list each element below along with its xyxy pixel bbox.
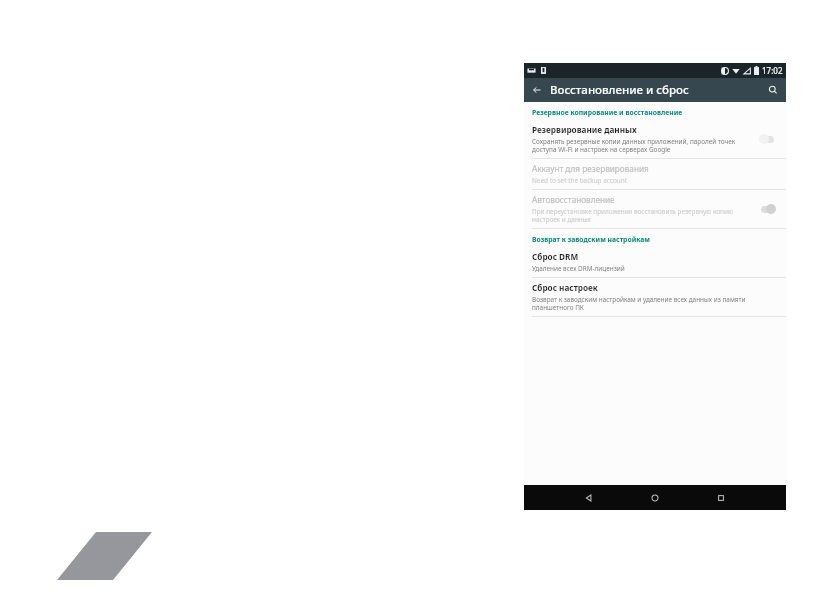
staticText: Аккаунт для резервирования bbox=[532, 163, 649, 174]
staticText: Возврат к заводским настройкам bbox=[532, 235, 651, 244]
staticText: Восстановление и сброс bbox=[550, 82, 689, 98]
button[interactable]: Сброс настроек bbox=[524, 278, 786, 316]
button[interactable]: Поиск bbox=[760, 78, 786, 102]
button[interactable]: Обзор bbox=[709, 486, 733, 510]
staticText: Need to set the backup account bbox=[532, 176, 627, 185]
staticText: Резервное копирование и восстановление bbox=[532, 108, 683, 117]
button[interactable]: Главный экран bbox=[643, 486, 667, 510]
button[interactable]: Сброс DRM bbox=[524, 247, 786, 277]
staticText: При переустановке приложения восстановит… bbox=[532, 207, 752, 224]
staticText: Сброс DRM bbox=[532, 251, 579, 262]
staticText: Автовосстановление bbox=[532, 194, 615, 205]
staticText: Сброс настроек bbox=[532, 282, 598, 293]
button[interactable]: Переключатель bbox=[752, 200, 782, 218]
staticText: Резервирование данных bbox=[532, 124, 637, 135]
staticText: Возврат к заводским настройкам и удалени… bbox=[532, 295, 778, 312]
button[interactable]: Переключатель bbox=[752, 130, 782, 148]
button[interactable]: Аккаунт для резервирования bbox=[524, 159, 786, 189]
staticText: Сохранять резервные копии данных приложе… bbox=[532, 137, 752, 154]
button[interactable]: Назад bbox=[577, 486, 601, 510]
button[interactable]: Резервирование данных bbox=[524, 120, 786, 158]
button[interactable]: Автовосстановление bbox=[524, 190, 786, 228]
staticText: Удаление всех DRM-лицензий bbox=[532, 264, 625, 273]
button[interactable]: Назад bbox=[524, 78, 550, 102]
staticText: 17:02 bbox=[762, 65, 783, 76]
